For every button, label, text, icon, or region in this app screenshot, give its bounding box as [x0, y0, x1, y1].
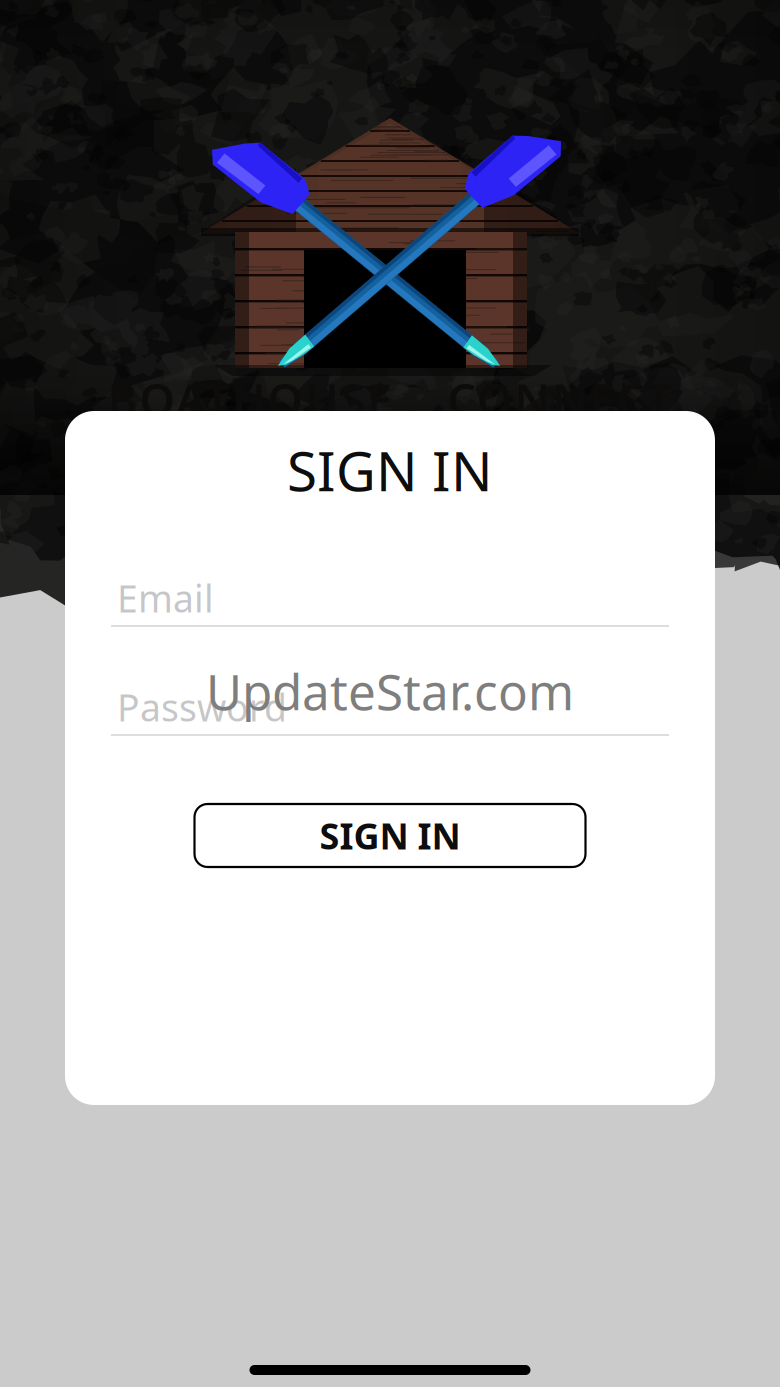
staticText: UpdateStar.com — [206, 658, 574, 724]
staticText: Password — [117, 682, 287, 732]
staticText: SIGN IN — [287, 434, 493, 506]
button[interactable]: Password — [111, 688, 669, 736]
staticText: SIGN IN — [319, 812, 460, 859]
button[interactable]: SIGN IN — [194, 804, 585, 867]
staticText: Email — [117, 573, 214, 623]
button[interactable]: Email — [111, 579, 669, 627]
staticText: BOATHOUSE CONNECT — [108, 369, 672, 429]
